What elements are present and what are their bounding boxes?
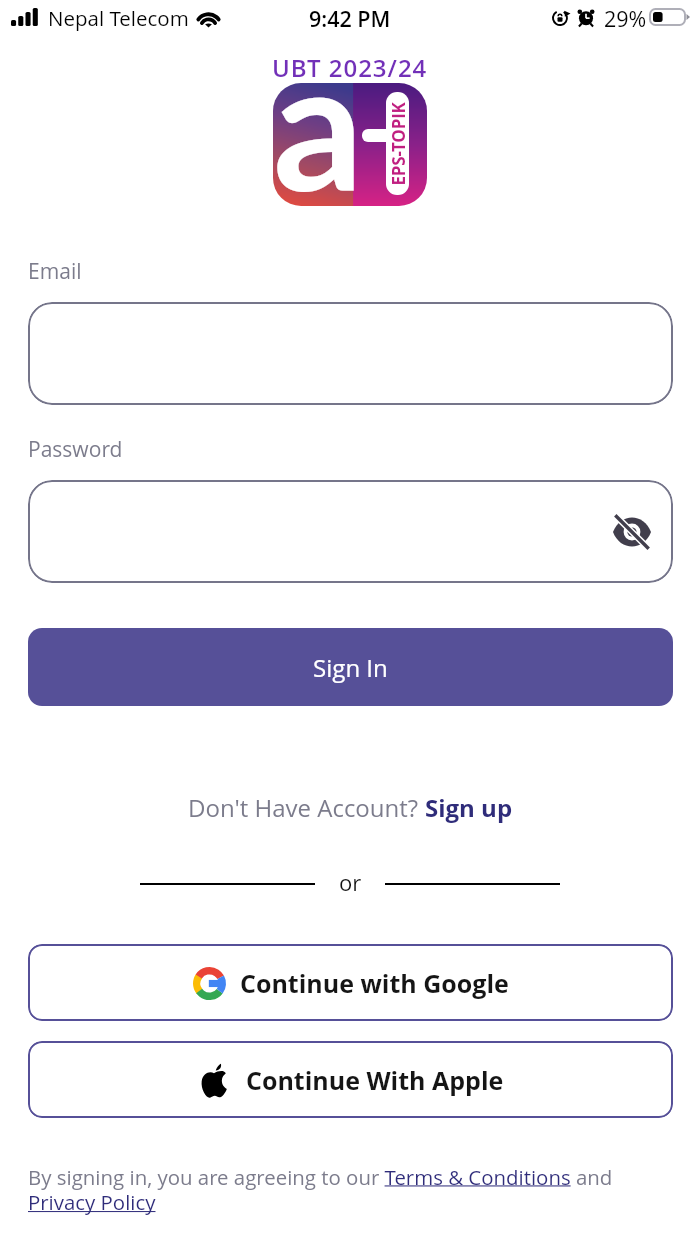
staticText: 29% xyxy=(604,4,647,33)
button[interactable]: Continue With Apple xyxy=(28,1041,673,1118)
staticText: UBT 2023/24 xyxy=(272,51,428,84)
button[interactable]: Sign up xyxy=(425,791,513,824)
staticText: Sign In xyxy=(313,651,388,684)
staticText: Continue With Apple xyxy=(246,1063,504,1097)
staticText: Don't Have Account? xyxy=(188,791,425,824)
staticText: Password xyxy=(28,435,123,464)
other: Battery 29 percent xyxy=(649,8,692,26)
staticText: Sign up xyxy=(425,791,513,824)
staticText: EPS-TOPIK xyxy=(386,101,408,185)
staticText: Nepal Telecom xyxy=(48,4,189,32)
staticText: Email xyxy=(28,257,82,286)
staticText: a xyxy=(273,83,364,206)
other: Alarm xyxy=(578,9,594,26)
staticText: 9:42 PM xyxy=(309,4,391,33)
button[interactable]: Show password xyxy=(28,480,673,583)
staticText: By signing in, you are agreeing to our T… xyxy=(28,1163,668,1216)
other: Rotation lock xyxy=(552,10,569,26)
staticText: or xyxy=(339,867,362,897)
button[interactable] xyxy=(28,302,673,405)
button[interactable]: Sign In xyxy=(28,628,673,706)
button[interactable]: Continue with Google xyxy=(28,944,673,1021)
staticText: Continue with Google xyxy=(240,966,509,1000)
button[interactable]: Show password xyxy=(606,510,658,554)
